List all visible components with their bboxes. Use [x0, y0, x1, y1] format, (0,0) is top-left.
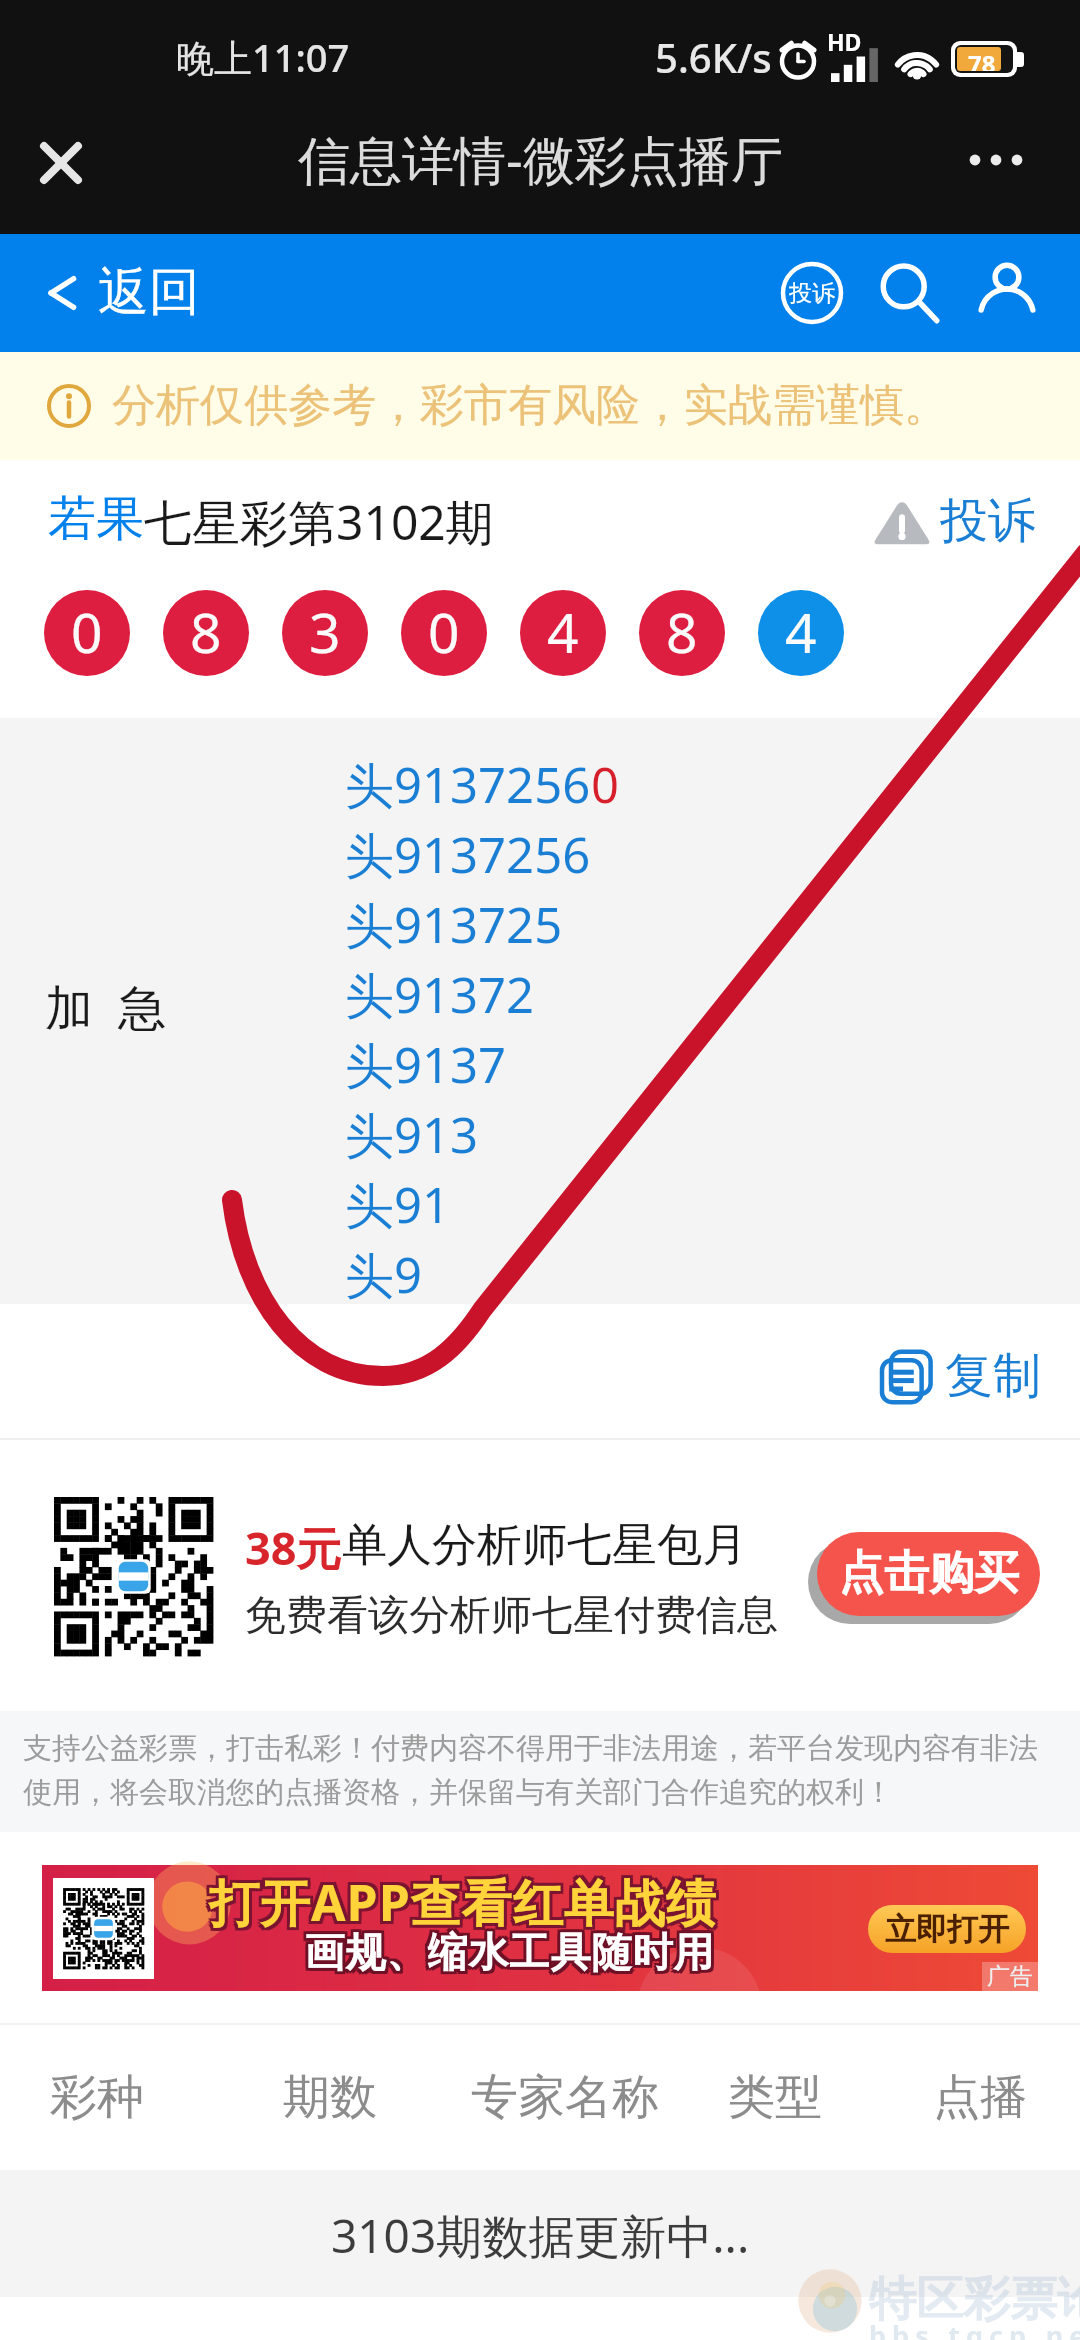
- staticText: 返回: [98, 260, 200, 324]
- staticText: 头91372: [345, 961, 535, 1031]
- staticText: 晚上11:07: [176, 31, 350, 83]
- staticText: 4: [547, 594, 579, 669]
- staticText: 画规、缩水工具随时用: [304, 1930, 714, 1980]
- button[interactable]: 投诉: [872, 474, 1036, 570]
- staticText: 打开APP查看红单战绩: [212, 1868, 720, 1936]
- staticText: 打开APP查看红单战绩: [209, 1865, 717, 1933]
- button[interactable]: Close: [22, 124, 100, 202]
- staticText: 专家名称: [471, 2068, 659, 2127]
- staticText: 期数: [283, 2068, 377, 2127]
- staticText: 分析仅供参考，彩市有风险，实战需谨慎。: [112, 378, 948, 433]
- staticText: 加 急: [45, 974, 166, 1040]
- button[interactable]: 打开APP查看红单战绩: [42, 1865, 1038, 1991]
- staticText: 画规、缩水工具随时用: [304, 1924, 714, 1974]
- staticText: 画规、缩水工具随时用: [301, 1924, 711, 1974]
- button[interactable]: Search: [876, 260, 942, 326]
- staticText: 头913: [345, 1101, 479, 1171]
- staticText: 0: [71, 594, 103, 669]
- staticText: 点播: [933, 2068, 1027, 2127]
- staticText: 打开APP查看红单战绩: [209, 1868, 717, 1936]
- button[interactable]: 复制: [879, 1322, 1041, 1432]
- staticText: 打开APP查看红单战绩: [206, 1871, 714, 1939]
- staticText: 立即打开: [885, 1910, 1009, 1949]
- staticText: 78: [968, 47, 996, 71]
- staticText: 3103期数据更新中...: [331, 2204, 750, 2267]
- button[interactable]: 点播: [930, 2025, 1030, 2170]
- staticText: 画规、缩水工具随时用: [301, 1930, 711, 1980]
- staticText: 头9137256: [345, 821, 591, 891]
- staticText: 特区彩票论坛: [869, 2270, 1080, 2329]
- staticText: 打开APP查看红单战绩: [206, 1868, 714, 1936]
- button[interactable]: 返回: [0, 234, 215, 352]
- staticText: 七星彩第3102期: [144, 489, 494, 555]
- staticText: 单人分析师七星包月: [342, 1517, 747, 1574]
- button[interactable]: 专家名称: [465, 2025, 665, 2170]
- button[interactable]: 投诉: [781, 262, 843, 324]
- staticText: 0: [591, 751, 620, 818]
- staticText: 打开APP查看红单战绩: [209, 1871, 717, 1939]
- staticText: 信息详情-微彩点播厅: [298, 123, 783, 194]
- staticText: 8: [666, 594, 698, 669]
- staticText: 打开APP查看红单战绩: [212, 1865, 720, 1933]
- staticText: 使用，将会取消您的点播资格，并保留与有关部门合作追究的权利！: [23, 1774, 893, 1811]
- staticText: HD: [827, 26, 862, 57]
- button[interactable]: More options: [956, 120, 1036, 200]
- button[interactable]: 点击购买: [817, 1532, 1040, 1616]
- staticText: 8: [190, 594, 222, 669]
- staticText: 画规、缩水工具随时用: [307, 1930, 717, 1980]
- staticText: 38元: [245, 1517, 342, 1578]
- staticText: 投诉: [789, 279, 835, 308]
- staticText: 若果: [48, 489, 144, 549]
- staticText: 彩种: [50, 2068, 144, 2127]
- staticText: 头913725: [345, 891, 563, 961]
- button[interactable]: 期数: [280, 2025, 380, 2170]
- staticText: 打开APP查看红单战绩: [206, 1865, 714, 1933]
- staticText: 支持公益彩票，打击私彩！付费内容不得用于非法用途，若平台发现内容有非法: [23, 1730, 1038, 1767]
- staticText: 头9137: [345, 1031, 507, 1101]
- staticText: 头91: [345, 1171, 451, 1241]
- staticText: 点击购买: [839, 1545, 1019, 1602]
- staticText: bbs.tqcp.net: [869, 2317, 1080, 2340]
- staticText: 画规、缩水工具随时用: [307, 1927, 717, 1977]
- staticText: 打开APP查看红单战绩: [212, 1871, 720, 1939]
- staticText: 头9137256: [345, 751, 591, 818]
- button[interactable]: 彩种: [47, 2025, 147, 2170]
- staticText: 3: [309, 594, 341, 669]
- staticText: 5.6K/s: [655, 30, 772, 84]
- staticText: 头9: [345, 1241, 423, 1311]
- staticText: 0: [428, 594, 460, 669]
- staticText: 4: [785, 594, 817, 669]
- staticText: 画规、缩水工具随时用: [307, 1924, 717, 1974]
- staticText: 画规、缩水工具随时用: [304, 1927, 714, 1977]
- staticText: 免费看该分析师七星付费信息: [245, 1590, 778, 1642]
- staticText: 广告: [987, 1962, 1033, 1991]
- staticText: 复制: [945, 1346, 1041, 1406]
- button[interactable]: 类型: [725, 2025, 825, 2170]
- staticText: 类型: [728, 2068, 822, 2127]
- staticText: 投诉: [940, 491, 1036, 551]
- staticText: 画规、缩水工具随时用: [301, 1927, 711, 1977]
- button[interactable]: Profile: [974, 260, 1040, 326]
